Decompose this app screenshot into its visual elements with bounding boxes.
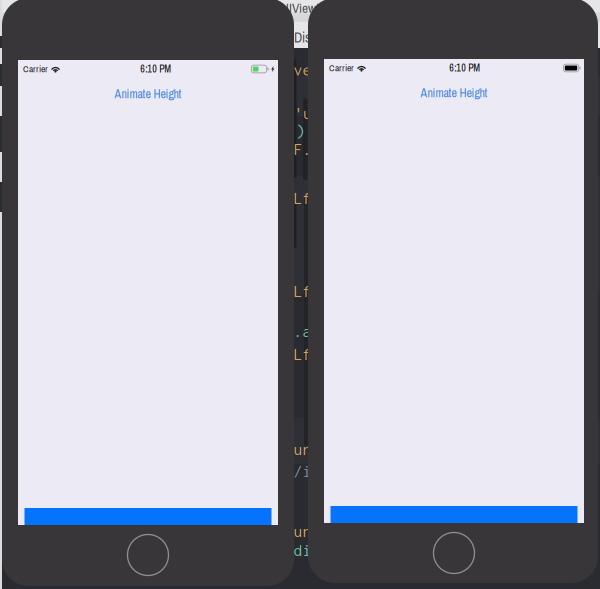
staticText: 'u (294, 104, 312, 122)
button[interactable]: Animate Height (18, 84, 278, 104)
staticText: Animate Height (420, 85, 487, 101)
staticText: UIViewLif (281, 0, 328, 17)
staticText: F. (293, 140, 311, 158)
staticText: un (293, 522, 311, 540)
staticText: Lf (293, 189, 311, 207)
staticText: .a (293, 322, 311, 340)
staticText: ) (296, 122, 305, 140)
staticText: Carrier (23, 63, 48, 75)
staticText: Carrier (329, 62, 354, 74)
staticText: di (293, 541, 311, 559)
staticText: Animate Height (114, 86, 181, 102)
button[interactable]: Animate Height (324, 83, 584, 103)
staticText: ve (293, 60, 311, 79)
staticText: Lf (293, 345, 311, 363)
staticText: /i (293, 462, 311, 480)
staticText: 6:10 PM (449, 61, 480, 75)
staticText: 6:10 PM (140, 62, 171, 76)
staticText: Lf (293, 282, 311, 300)
staticText: Dis (294, 28, 311, 47)
staticText: un (293, 440, 311, 458)
